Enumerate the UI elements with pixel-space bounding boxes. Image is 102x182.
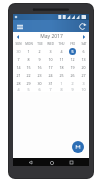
button[interactable]: 9 <box>67 87 78 92</box>
button[interactable]: 15 <box>23 63 34 71</box>
button[interactable]: 19 <box>67 63 78 71</box>
staticText: 23 <box>37 73 42 78</box>
staticText: 2 <box>71 81 74 86</box>
button[interactable]: 6 <box>78 47 89 55</box>
button[interactable]: 24 <box>45 71 56 79</box>
button[interactable]: Home <box>48 159 55 166</box>
button[interactable]: 5 <box>23 87 34 92</box>
button[interactable]: 31 <box>45 79 56 87</box>
button[interactable]: 25 <box>56 71 67 79</box>
staticText: 7 <box>17 57 20 62</box>
staticText: SAT <box>81 42 87 46</box>
staticText: FRI <box>70 42 75 46</box>
staticText: 30 <box>16 49 21 54</box>
button[interactable]: Refresh <box>78 22 87 31</box>
staticText: 3 <box>82 81 85 86</box>
button[interactable]: 22 <box>23 71 34 79</box>
button[interactable]: 3 <box>78 79 89 87</box>
button[interactable]: 10 <box>78 87 89 92</box>
button[interactable]: 27 <box>78 71 89 79</box>
staticText: 19 <box>70 65 75 70</box>
staticText: 29 <box>26 81 31 86</box>
button[interactable]: 12 <box>67 55 78 63</box>
button[interactable]: 23 <box>34 71 45 79</box>
button[interactable]: Back <box>27 159 34 166</box>
button[interactable]: Open navigation drawer <box>15 22 24 31</box>
staticText: 9 <box>71 87 74 92</box>
staticText: May 2017 <box>40 33 63 40</box>
button[interactable]: 1 <box>23 47 34 55</box>
button[interactable]: 4 <box>13 87 23 92</box>
staticText: 24 <box>48 73 53 78</box>
button[interactable]: 7 <box>13 55 23 63</box>
staticText: 4 <box>17 87 20 92</box>
button[interactable]: 30 <box>34 79 45 87</box>
button[interactable]: Previous month <box>14 33 22 41</box>
button[interactable]: 8 <box>23 55 34 63</box>
button[interactable]: 8 <box>56 87 67 92</box>
staticText: 11 <box>59 57 64 62</box>
button[interactable]: 21 <box>13 71 23 79</box>
button[interactable]: Recent apps <box>68 159 75 166</box>
staticText: MON <box>25 42 33 46</box>
staticText: 3 <box>49 49 52 54</box>
button[interactable]: 2 <box>34 47 45 55</box>
staticText: 16 <box>37 65 42 70</box>
staticText: 22 <box>26 73 31 78</box>
button[interactable]: Next month <box>80 33 88 41</box>
staticText: 26 <box>70 73 75 78</box>
button[interactable]: 18 <box>56 63 67 71</box>
staticText: 1 <box>27 49 30 54</box>
staticText: 8 <box>27 57 30 62</box>
button[interactable]: 30 <box>13 47 23 55</box>
button[interactable]: 5 <box>67 47 78 55</box>
button[interactable]: 7 <box>45 87 56 92</box>
staticText: 9 <box>38 57 41 62</box>
button[interactable]: 10 <box>45 55 56 63</box>
staticText: TUE <box>37 42 43 46</box>
staticText: 28 <box>16 81 21 86</box>
staticText: 8 <box>60 87 63 92</box>
button[interactable]: 17 <box>45 63 56 71</box>
staticText: 7 <box>49 87 52 92</box>
button[interactable]: 14 <box>13 63 23 71</box>
button[interactable]: 16 <box>34 63 45 71</box>
staticText: 4 <box>60 49 63 54</box>
staticText: SUN <box>15 42 22 46</box>
button[interactable]: Add event <box>72 141 84 153</box>
staticText: 13 <box>81 57 86 62</box>
staticText: 31 <box>48 81 53 86</box>
staticText: 27 <box>81 73 86 78</box>
staticText: 15 <box>26 65 31 70</box>
staticText: 6 <box>38 87 41 92</box>
staticText: 2 <box>38 49 41 54</box>
button[interactable]: 29 <box>23 79 34 87</box>
button[interactable]: 9 <box>34 55 45 63</box>
button[interactable]: 2 <box>67 79 78 87</box>
button[interactable]: 13 <box>78 55 89 63</box>
staticText: 25 <box>59 73 64 78</box>
staticText: THU <box>58 42 65 46</box>
staticText: 20 <box>81 65 86 70</box>
staticText: 10 <box>48 57 53 62</box>
button[interactable]: 20 <box>78 63 89 71</box>
staticText: 30 <box>37 81 42 86</box>
staticText: 12 <box>70 57 75 62</box>
staticText: 14 <box>16 65 21 70</box>
button[interactable]: 3 <box>45 47 56 55</box>
staticText: 5 <box>71 49 74 54</box>
button[interactable]: 28 <box>13 79 23 87</box>
staticText: 6 <box>82 49 85 54</box>
staticText: 21 <box>16 73 21 78</box>
staticText: WED <box>47 42 54 46</box>
button[interactable]: 26 <box>67 71 78 79</box>
button[interactable]: 1 <box>56 79 67 87</box>
button[interactable]: 6 <box>34 87 45 92</box>
staticText: 17 <box>48 65 53 70</box>
staticText: 10 <box>81 87 86 92</box>
staticText: 18 <box>59 65 64 70</box>
button[interactable]: 11 <box>56 55 67 63</box>
staticText: 1 <box>60 81 63 86</box>
staticText: 5 <box>27 87 30 92</box>
button[interactable]: 4 <box>56 47 67 55</box>
